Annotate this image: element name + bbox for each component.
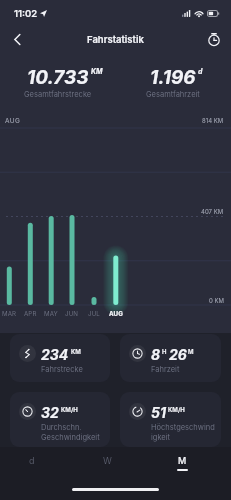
staticText: Fahrstrecke — [41, 365, 83, 374]
staticText: Gesamtfahrstrecke — [24, 90, 92, 99]
button[interactable]: 51 — [120, 392, 221, 447]
staticText: 32 — [41, 404, 59, 421]
staticText: Höchstgeschwind igkeit — [151, 423, 215, 442]
staticText: JUN — [65, 310, 79, 318]
staticText: MAR — [2, 310, 17, 318]
staticText: KM — [71, 348, 81, 355]
staticText: 0 KM — [209, 297, 224, 304]
staticText: Durchschn. Geschwindigkeit — [41, 423, 100, 442]
button[interactable]: M — [162, 447, 202, 477]
staticText: 11:02 — [14, 8, 38, 19]
staticText: M — [188, 348, 194, 355]
staticText: 234 — [41, 346, 69, 363]
staticText: W — [103, 455, 112, 466]
staticText: KM/H — [168, 406, 185, 413]
staticText: Fahrstatistik — [87, 34, 144, 45]
button[interactable]: W — [87, 447, 127, 477]
staticText: d — [29, 455, 35, 466]
button[interactable]: d — [12, 447, 52, 477]
staticText: 26 — [169, 346, 187, 363]
staticText: APR — [24, 310, 37, 318]
staticText: d — [198, 67, 203, 75]
staticText: 814 KM — [202, 117, 224, 124]
staticText: H — [162, 348, 167, 355]
button[interactable]: Timer — [203, 28, 225, 50]
button[interactable]: Back — [5, 27, 29, 51]
staticText: JUL — [88, 310, 100, 318]
button[interactable]: 32 — [10, 392, 110, 447]
staticText: 407 KM — [201, 208, 224, 215]
staticText: M — [178, 455, 187, 466]
staticText: MAY — [44, 310, 58, 318]
staticText: 10.733 — [27, 66, 89, 89]
staticText: KM — [91, 67, 103, 75]
staticText: AUG — [5, 117, 21, 125]
staticText: 1.196 — [150, 66, 196, 89]
staticText: 8 — [151, 346, 161, 363]
staticText: Fahrzeit — [151, 365, 180, 374]
staticText: Gesamtfahrzeit — [146, 90, 200, 99]
button[interactable]: 234 — [10, 334, 110, 382]
button[interactable]: 8 — [120, 334, 221, 382]
staticText: 51 — [151, 404, 166, 421]
staticText: AUG — [109, 310, 123, 318]
staticText: KM/H — [61, 406, 78, 413]
